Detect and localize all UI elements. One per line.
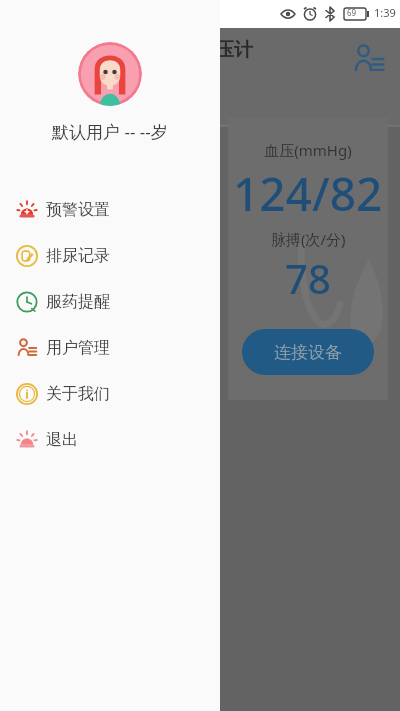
button[interactable] <box>78 42 142 106</box>
staticText: 关于我们 <box>46 384 110 404</box>
staticText: 血压计 <box>196 38 253 62</box>
button[interactable]: 用户管理 <box>0 325 220 371</box>
button[interactable]: 关于我们 <box>0 371 220 417</box>
staticText: 用户管理 <box>46 338 110 358</box>
button[interactable]: 连接设备 <box>242 329 374 375</box>
staticText: 退出 <box>46 430 78 450</box>
staticText: 血压(mmHg) <box>264 140 352 160</box>
staticText: 124/82 <box>233 162 383 225</box>
staticText: 脉搏(次/分) <box>271 229 346 249</box>
staticText: 69 <box>347 7 357 18</box>
staticText: 1:39 <box>374 5 396 20</box>
staticText: 默认用户 -- --岁 <box>52 120 168 143</box>
staticText: 连接设备 <box>274 342 342 363</box>
staticText: 排尿记录 <box>46 246 110 266</box>
button[interactable]: User management <box>352 42 386 76</box>
button[interactable]: 预警设置 <box>0 187 220 233</box>
staticText: 预警设置 <box>46 200 110 220</box>
button[interactable]: 服药提醒 <box>0 279 220 325</box>
staticText: 服药提醒 <box>46 292 110 312</box>
button[interactable]: 排尿记录 <box>0 233 220 279</box>
button[interactable]: 退出 <box>0 417 220 463</box>
staticText: 78 <box>285 251 331 305</box>
